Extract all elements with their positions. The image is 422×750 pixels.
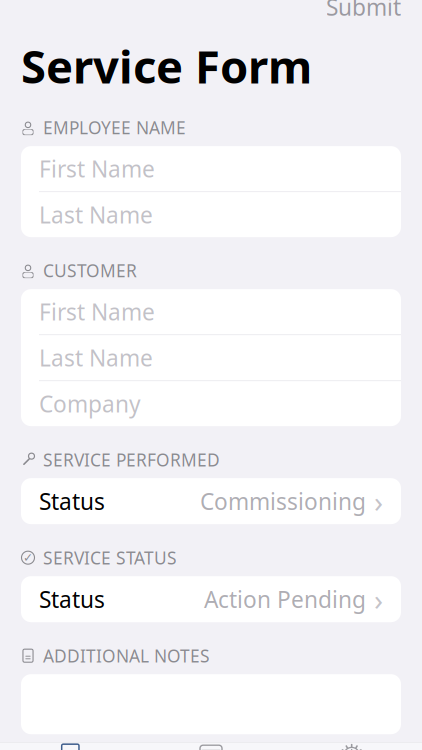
staticText: › — [374, 482, 383, 521]
button[interactable]: Service Records — [141, 742, 281, 750]
staticText: Service Form — [21, 36, 312, 96]
staticText: EMPLOYEE NAME — [43, 116, 186, 139]
staticText: CUSTOMER — [43, 259, 137, 282]
staticText: Action Pending — [204, 584, 366, 614]
button[interactable]: Status — [21, 478, 401, 524]
button[interactable]: Submit — [322, 0, 405, 26]
staticText: Commissioning — [200, 486, 366, 516]
staticText: Last Name — [39, 343, 153, 373]
button[interactable]: Status — [21, 576, 401, 622]
staticText: First Name — [39, 154, 155, 184]
staticText: › — [374, 580, 383, 619]
staticText: Status — [39, 584, 105, 614]
staticText: First Name — [39, 297, 155, 327]
staticText: Company — [39, 389, 141, 419]
button[interactable]: Service Form — [0, 742, 141, 750]
staticText: ADDITIONAL NOTES — [43, 644, 210, 667]
staticText: ✓ — [23, 551, 33, 564]
staticText: SERVICE STATUS — [43, 546, 177, 569]
staticText: Status — [39, 486, 105, 516]
staticText: SERVICE PERFORMED — [43, 448, 220, 471]
staticText: Submit — [326, 0, 401, 22]
staticText: Last Name — [39, 200, 153, 230]
button[interactable]: Settings — [281, 742, 422, 750]
